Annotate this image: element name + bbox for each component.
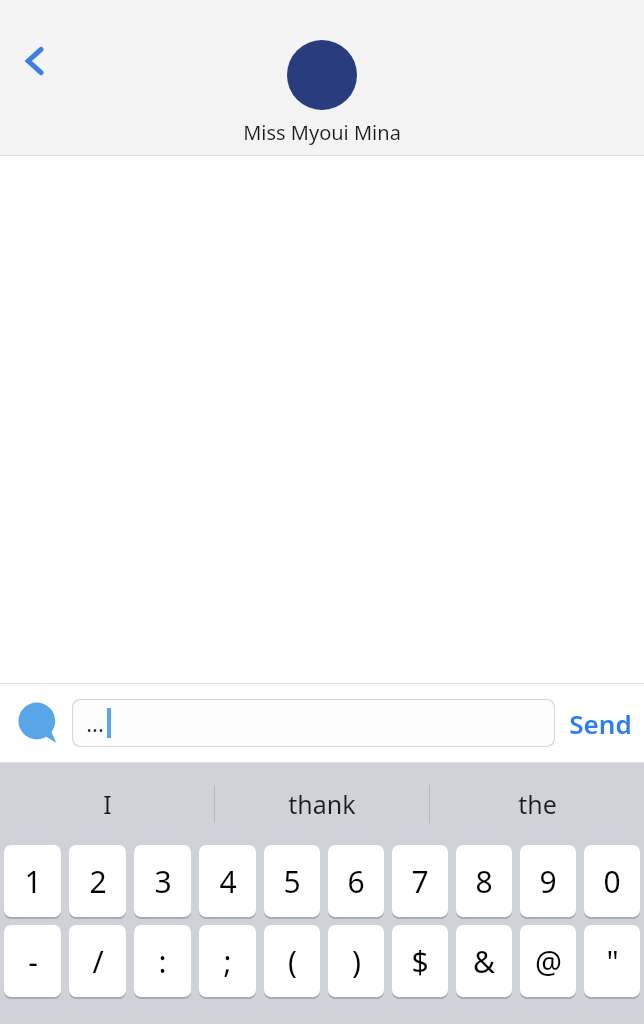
button[interactable]: 4 bbox=[199, 845, 256, 917]
staticText: " bbox=[606, 941, 619, 982]
staticText: 2 bbox=[89, 861, 107, 902]
button[interactable]: thank bbox=[215, 763, 429, 845]
button[interactable]: 3 bbox=[134, 845, 191, 917]
staticText: Send bbox=[569, 706, 632, 741]
staticText: @ bbox=[535, 941, 562, 982]
staticText: : bbox=[158, 941, 167, 982]
staticText: 8 bbox=[475, 861, 493, 902]
button[interactable]: ... bbox=[72, 699, 555, 747]
staticText: & bbox=[473, 941, 495, 982]
staticText: $ bbox=[411, 941, 429, 982]
staticText: 0 bbox=[603, 861, 621, 902]
staticText: - bbox=[28, 941, 38, 982]
button[interactable]: @ bbox=[520, 925, 576, 997]
button[interactable]: Back bbox=[6, 32, 64, 90]
staticText: 9 bbox=[539, 861, 557, 902]
staticText: ( bbox=[288, 941, 297, 982]
button[interactable]: / bbox=[69, 925, 126, 997]
button[interactable]: Stickers bbox=[16, 701, 60, 745]
button[interactable]: ) bbox=[328, 925, 384, 997]
button[interactable]: 8 bbox=[456, 845, 512, 917]
staticText: the bbox=[518, 787, 557, 821]
button[interactable]: - bbox=[4, 925, 61, 997]
staticText: ... bbox=[86, 708, 104, 738]
button[interactable]: & bbox=[456, 925, 512, 997]
staticText: ; bbox=[223, 941, 232, 982]
button[interactable]: 2 bbox=[69, 845, 126, 917]
button[interactable]: : bbox=[134, 925, 191, 997]
button[interactable]: 1 bbox=[4, 845, 61, 917]
button[interactable]: 0 bbox=[584, 845, 640, 917]
button[interactable]: 5 bbox=[264, 845, 320, 917]
staticText: ) bbox=[352, 941, 361, 982]
button[interactable]: Send bbox=[569, 693, 632, 753]
staticText: I bbox=[103, 787, 112, 821]
button[interactable]: ; bbox=[199, 925, 256, 997]
button[interactable]: I bbox=[0, 763, 214, 845]
button[interactable]: $ bbox=[392, 925, 448, 997]
staticText: 6 bbox=[347, 861, 365, 902]
staticText: 5 bbox=[283, 861, 301, 902]
staticText: 1 bbox=[24, 861, 42, 902]
button[interactable]: " bbox=[584, 925, 640, 997]
button[interactable]: 9 bbox=[520, 845, 576, 917]
staticText: 3 bbox=[154, 861, 172, 902]
button[interactable]: 6 bbox=[328, 845, 384, 917]
button[interactable]: the bbox=[430, 763, 644, 845]
staticText: thank bbox=[288, 787, 356, 821]
staticText: 4 bbox=[219, 861, 237, 902]
staticText: 7 bbox=[411, 861, 429, 902]
staticText: Miss Myoui Mina bbox=[243, 119, 401, 146]
button[interactable]: Miss Myoui Mina bbox=[243, 40, 401, 146]
button[interactable]: ( bbox=[264, 925, 320, 997]
staticText: / bbox=[92, 941, 104, 982]
button[interactable]: 7 bbox=[392, 845, 448, 917]
